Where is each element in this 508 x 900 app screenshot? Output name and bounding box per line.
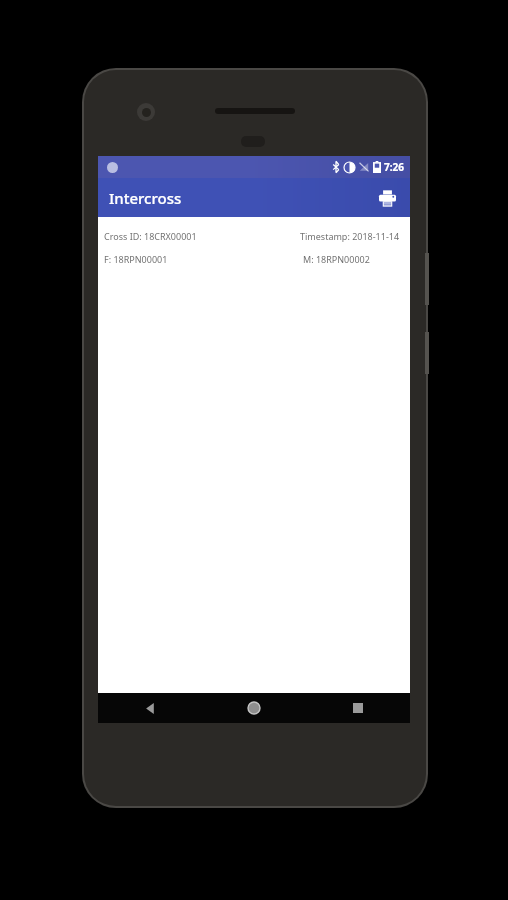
staticText: Timestamp: 2018-11-14 xyxy=(300,230,400,242)
button[interactable]: Back xyxy=(98,693,202,723)
staticText: F: 18RPN00001 xyxy=(104,253,168,265)
button[interactable]: Home xyxy=(202,693,306,723)
staticText: M: 18RPN00002 xyxy=(303,253,370,265)
button[interactable]: Print xyxy=(370,181,404,215)
staticText: Cross ID: 18CRX00001 xyxy=(104,230,197,242)
button[interactable]: Recent apps xyxy=(306,693,410,723)
staticText: 7:26 xyxy=(384,160,404,174)
button[interactable]: Cross ID: 18CRX00001 xyxy=(98,228,410,244)
button[interactable]: F: 18RPN00001 xyxy=(98,251,410,267)
staticText: Intercross xyxy=(109,188,182,208)
